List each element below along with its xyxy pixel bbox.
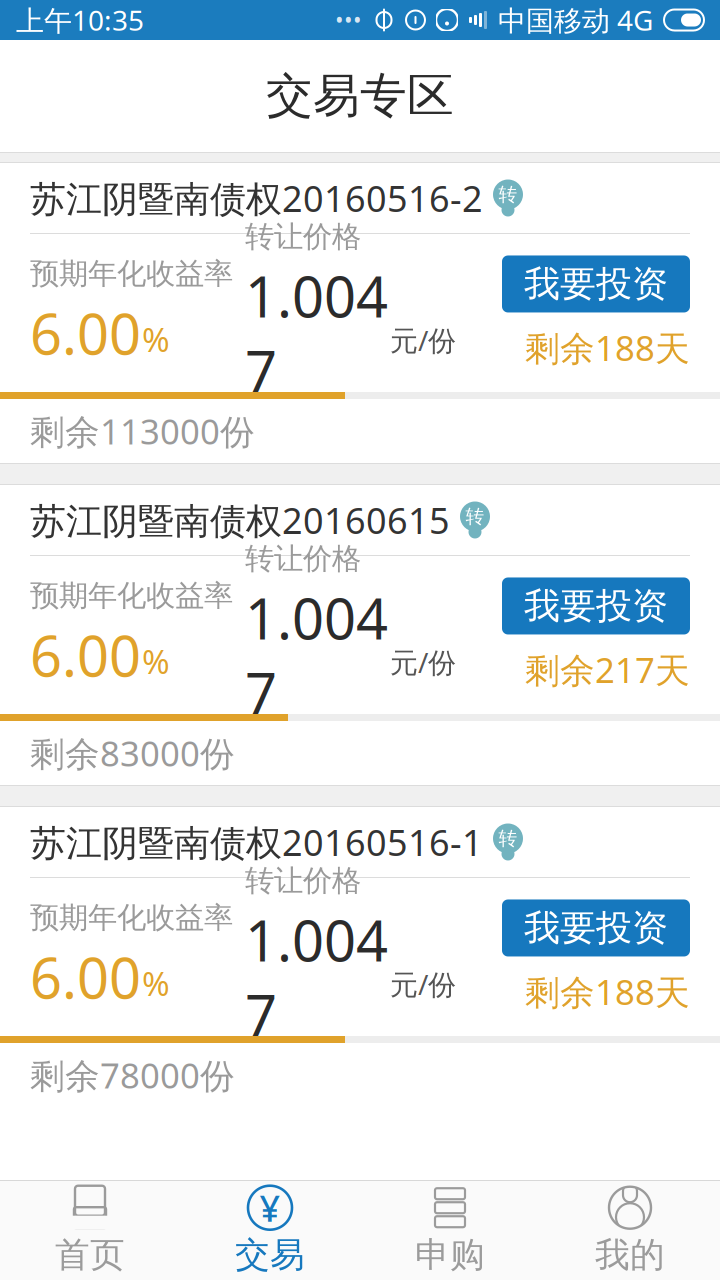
button[interactable]: 我要投资 xyxy=(502,899,690,956)
staticText: % xyxy=(142,961,170,1005)
staticText: 转 xyxy=(498,827,517,850)
staticText: % xyxy=(142,317,170,361)
staticText: 6.00 xyxy=(30,940,141,1014)
staticText: 上午10:35 xyxy=(16,1,144,39)
staticText: 元/份 xyxy=(390,965,456,1003)
staticText: 元/份 xyxy=(390,643,456,681)
staticText: 剩余188天 xyxy=(525,968,690,1014)
button[interactable]: 苏江阴暨南债权20160516-1 xyxy=(0,807,720,877)
staticText: 首页 xyxy=(55,1234,125,1276)
staticText: 剩余217天 xyxy=(525,646,690,692)
staticText: 交易专区 xyxy=(266,67,454,125)
staticText: 我要投资 xyxy=(524,906,668,950)
staticText: ¥ xyxy=(259,1184,280,1232)
button[interactable]: 首页 xyxy=(0,1181,180,1280)
staticText: 我要投资 xyxy=(524,584,668,628)
staticText: % xyxy=(142,639,170,683)
staticText: ••• xyxy=(335,5,362,35)
staticText: 预期年化收益率 xyxy=(30,256,233,292)
button[interactable]: 申购 xyxy=(360,1181,540,1280)
staticText: 苏江阴暨南债权20160516-2 xyxy=(30,174,483,222)
staticText: 交易 xyxy=(235,1234,305,1276)
staticText: 6.00 xyxy=(30,618,141,692)
staticText: 1.0047 xyxy=(245,259,388,407)
staticText: 中国移动 4G xyxy=(498,1,653,39)
staticText: 剩余113000份 xyxy=(30,408,255,454)
staticText: 6.00 xyxy=(30,296,141,370)
staticText: 剩余83000份 xyxy=(30,730,235,776)
staticText: 预期年化收益率 xyxy=(30,900,233,936)
staticText: 元/份 xyxy=(390,321,456,359)
staticText: 预期年化收益率 xyxy=(30,578,233,614)
staticText: 苏江阴暨南债权20160615 xyxy=(30,496,450,544)
staticText: 转 xyxy=(465,505,484,528)
staticText: 剩余78000份 xyxy=(30,1052,235,1098)
staticText: 转让价格 xyxy=(245,541,361,577)
button[interactable]: 我要投资 xyxy=(502,577,690,634)
staticText: 苏江阴暨南债权20160516-1 xyxy=(30,818,483,866)
staticText: 转让价格 xyxy=(245,219,361,255)
button[interactable]: 我的 xyxy=(540,1181,720,1280)
button[interactable]: 苏江阴暨南债权20160615 xyxy=(0,485,720,555)
staticText: 我要投资 xyxy=(524,262,668,306)
button[interactable]: 我要投资 xyxy=(502,255,690,312)
staticText: 转让价格 xyxy=(245,863,361,899)
staticText: 剩余188天 xyxy=(525,324,690,370)
staticText: 转 xyxy=(498,183,517,206)
staticText: 1.0047 xyxy=(245,903,388,1051)
staticText: 申购 xyxy=(415,1234,485,1276)
staticText: 1.0047 xyxy=(245,581,388,729)
button[interactable]: 苏江阴暨南债权20160516-2 xyxy=(0,163,720,233)
staticText: 我的 xyxy=(595,1234,665,1276)
button[interactable]: ¥ xyxy=(180,1181,360,1280)
